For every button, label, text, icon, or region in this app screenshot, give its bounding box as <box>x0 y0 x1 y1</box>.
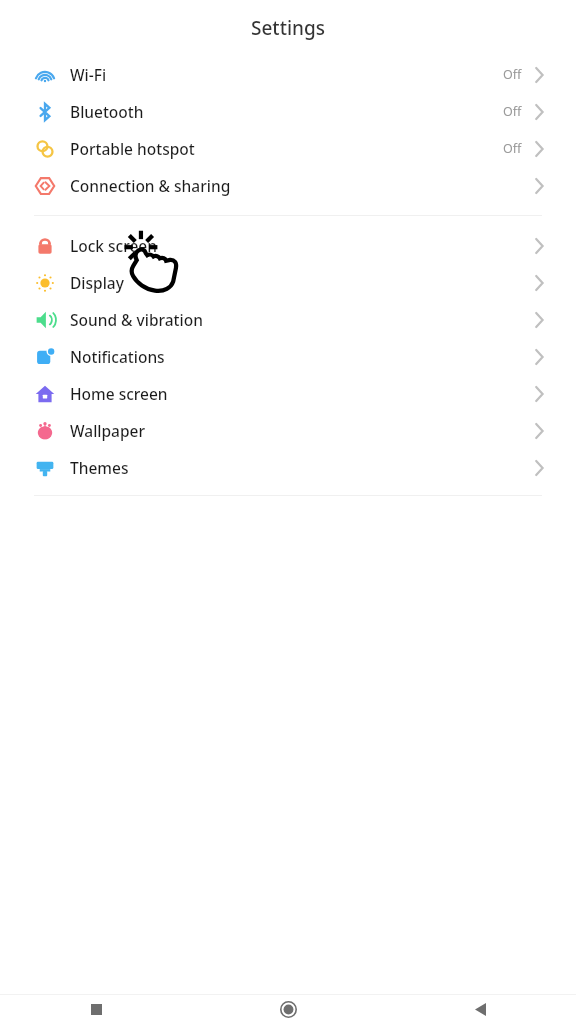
button[interactable]: Wallpaper <box>0 412 576 449</box>
staticText: Sound & vibration <box>70 309 535 330</box>
button[interactable]: Wi-Fi <box>0 56 576 93</box>
staticText: Off <box>503 66 522 83</box>
staticText: Portable hotspot <box>70 138 503 159</box>
button[interactable]: Portable hotspot <box>0 130 576 167</box>
button[interactable]: Sound & vibration <box>0 301 576 338</box>
staticText: Wi-Fi <box>70 64 503 85</box>
button[interactable]: Lock screen <box>0 227 576 264</box>
button[interactable]: Connection & sharing <box>0 167 576 204</box>
staticText: Display <box>70 272 535 293</box>
button[interactable]: Themes <box>0 449 576 486</box>
staticText: Off <box>503 140 522 157</box>
button[interactable]: Home screen <box>0 375 576 412</box>
button[interactable]: Notifications <box>0 338 576 375</box>
button[interactable]: Home <box>192 995 384 1024</box>
staticText: Bluetooth <box>70 101 503 122</box>
staticText: Wallpaper <box>70 420 535 441</box>
button[interactable]: Bluetooth <box>0 93 576 130</box>
button[interactable]: Recents <box>0 995 192 1024</box>
button[interactable]: Back <box>384 995 576 1024</box>
staticText: Connection & sharing <box>70 175 535 196</box>
button[interactable]: Display <box>0 264 576 301</box>
staticText: Off <box>503 103 522 120</box>
staticText: Themes <box>70 457 535 478</box>
staticText: Notifications <box>70 346 535 367</box>
staticText: Home screen <box>70 383 535 404</box>
staticText: Settings <box>251 15 325 41</box>
staticText: Lock screen <box>70 235 535 256</box>
